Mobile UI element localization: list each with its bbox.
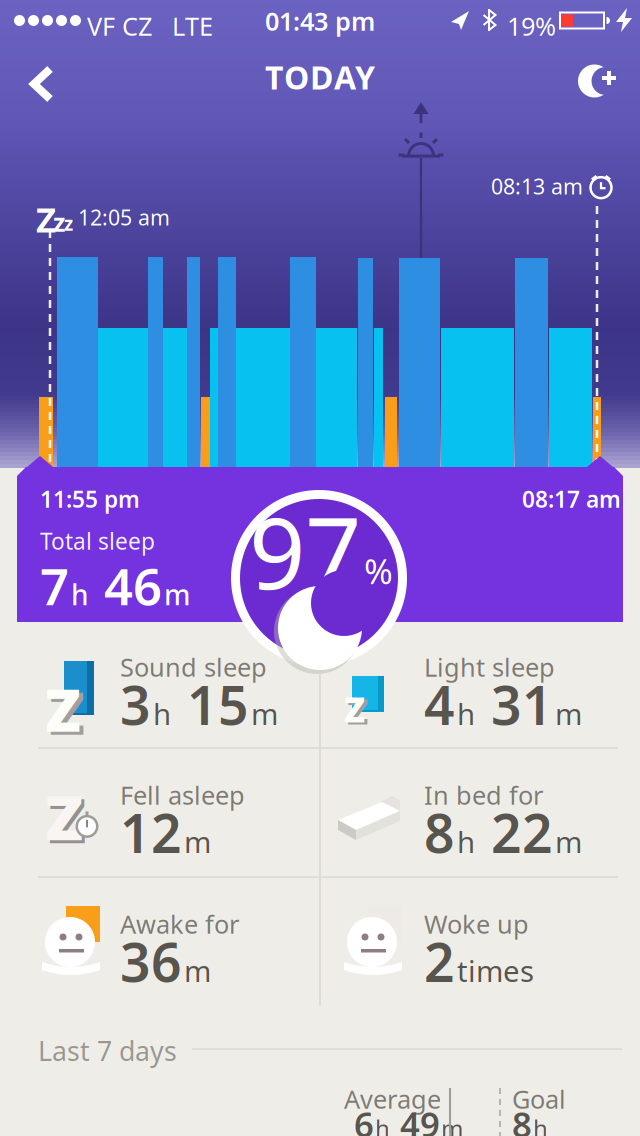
staticText: Light sleep (424, 650, 555, 684)
staticText: 3 (120, 669, 151, 740)
staticText: z (64, 211, 73, 236)
staticText: Z (49, 673, 85, 751)
staticText: z (53, 205, 65, 239)
staticText: TODAY (265, 56, 375, 98)
staticText: h (457, 694, 475, 733)
staticText: h (457, 822, 475, 861)
staticText: Z (45, 670, 81, 748)
staticText: Z (45, 774, 83, 858)
staticText: VF CZ (87, 9, 152, 43)
staticText: In bed for (424, 778, 543, 812)
staticText: h (71, 576, 89, 613)
staticText: m (164, 576, 191, 613)
staticText: m (441, 1112, 463, 1136)
staticText: Z (48, 777, 86, 861)
staticText: Z (36, 196, 56, 242)
staticText: Goal (512, 1082, 566, 1116)
staticText: m (184, 951, 211, 990)
staticText: 19% (507, 9, 556, 43)
staticText: 4 (424, 669, 455, 740)
staticText: m (251, 694, 278, 733)
staticText: 22 (477, 797, 553, 868)
staticText: % (364, 548, 393, 594)
staticText: 8 (424, 797, 455, 868)
staticText: 11:55 pm (40, 484, 140, 514)
staticText: h (153, 694, 171, 733)
staticText: m (184, 822, 211, 861)
button[interactable] (26, 64, 60, 104)
staticText: Z (347, 688, 368, 734)
staticText: m (555, 694, 582, 733)
staticText: Woke up (424, 907, 529, 941)
button[interactable] (572, 60, 622, 104)
staticText: 2 (424, 926, 455, 997)
staticText: h (375, 1112, 390, 1136)
staticText: 8 (512, 1101, 532, 1136)
staticText: 7 (40, 552, 69, 619)
staticText: 49 (391, 1101, 440, 1136)
staticText: 6 (354, 1101, 374, 1136)
staticText: h (533, 1112, 548, 1136)
staticText: Last 7 days (38, 1033, 177, 1068)
staticText: 12 (120, 797, 182, 868)
staticText: 01:43 pm (265, 4, 375, 38)
staticText: Fell asleep (120, 778, 245, 812)
staticText: LTE (172, 9, 213, 43)
staticText: Sound sleep (120, 650, 267, 684)
staticText: 08:13 am (491, 172, 583, 200)
staticText: 12:05 am (78, 203, 170, 231)
staticText: 36 (120, 926, 182, 997)
staticText: Total sleep (40, 526, 155, 556)
staticText: 15 (173, 669, 249, 740)
staticText: 46 (91, 552, 162, 619)
staticText: Awake for (120, 907, 239, 941)
staticText: 97 (249, 485, 361, 616)
staticText: Z (344, 686, 365, 732)
staticText: 08:17 am (522, 484, 621, 514)
staticText: m (555, 822, 582, 861)
staticText: 31 (477, 669, 553, 740)
staticText: Average (344, 1082, 441, 1116)
staticText: times (457, 951, 534, 990)
